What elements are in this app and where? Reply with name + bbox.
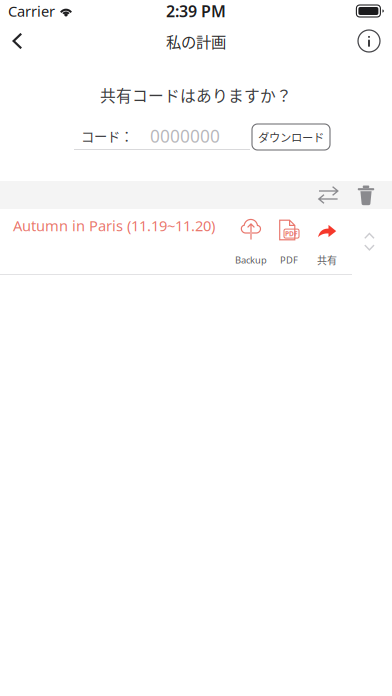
staticText: 2:39 PM	[166, 0, 226, 22]
staticText: 共有	[317, 253, 337, 267]
staticText: PDF	[280, 254, 298, 266]
staticText: ダウンロード	[258, 129, 324, 145]
staticText: Backup	[235, 254, 267, 266]
button[interactable]: Backup	[232, 217, 270, 265]
staticText: 0000000	[150, 124, 220, 147]
button[interactable]: ダウンロード	[252, 124, 330, 150]
button[interactable]: Autumn in Paris (11.19~11.20)	[0, 209, 392, 274]
button[interactable]: Delete plan	[353, 185, 379, 205]
staticText: PDF	[285, 229, 298, 238]
button[interactable]: Reorder plans	[314, 185, 343, 204]
button[interactable]: Reorder	[364, 232, 375, 250]
staticText: 私の計画	[166, 30, 226, 52]
button[interactable]: Back	[3, 24, 32, 57]
staticText: 共有コードはありますか？	[100, 84, 292, 106]
staticText: Autumn in Paris (11.19~11.20)	[13, 216, 215, 235]
button[interactable]: Share	[308, 217, 346, 265]
staticText: Carrier	[8, 1, 55, 21]
button[interactable]: Export PDF	[270, 217, 308, 265]
button[interactable]: Information	[349, 24, 389, 58]
staticText: コード：	[81, 126, 133, 146]
